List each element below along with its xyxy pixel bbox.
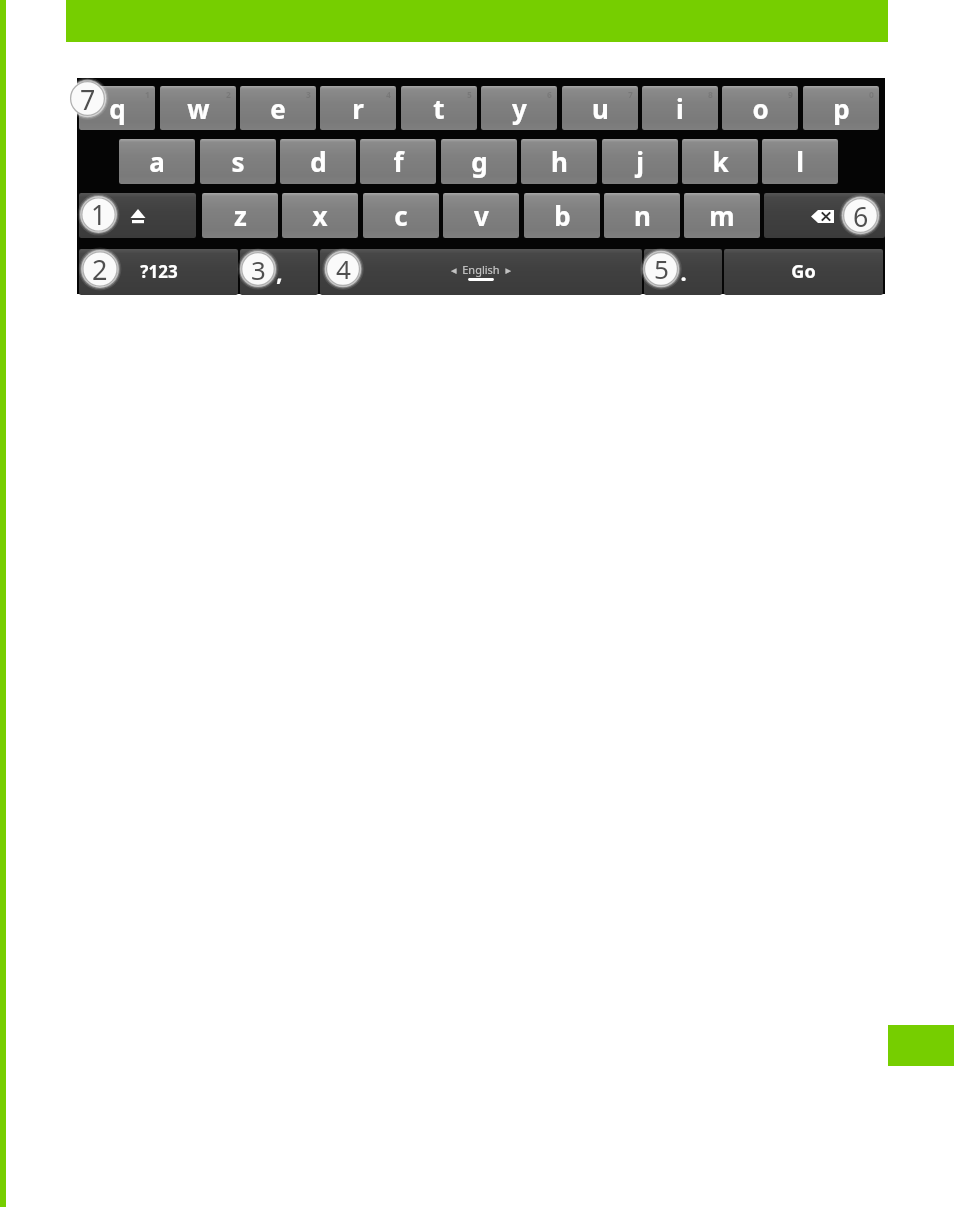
staticText: j <box>636 144 644 179</box>
button[interactable]: Space <box>320 249 642 295</box>
button[interactable]: v <box>443 193 519 238</box>
button[interactable]: m <box>684 193 760 238</box>
staticText: 6 <box>853 198 869 234</box>
button[interactable]: 3 <box>240 86 316 130</box>
button[interactable]: 9 <box>722 86 798 130</box>
staticText: 5 <box>467 89 472 101</box>
staticText: 2 <box>92 251 108 288</box>
staticText: e <box>270 91 286 126</box>
staticText: ?123 <box>140 260 178 283</box>
staticText: o <box>752 91 769 126</box>
staticText: 6 <box>547 89 552 101</box>
button[interactable]: 0 <box>803 86 879 130</box>
button[interactable]: a <box>119 139 195 184</box>
button[interactable]: 4 <box>320 86 396 130</box>
staticText: m <box>709 198 735 233</box>
staticText: c <box>394 198 408 233</box>
staticText: u <box>592 91 609 126</box>
staticText: 1 <box>91 197 107 233</box>
staticText: 7 <box>80 81 96 117</box>
button[interactable]: b <box>524 193 600 238</box>
button[interactable]: ?123 <box>79 249 238 295</box>
button[interactable]: l <box>762 139 838 184</box>
button[interactable]: g <box>441 139 517 184</box>
staticText: t <box>433 91 445 126</box>
staticText: n <box>634 198 651 233</box>
staticText: 8 <box>708 89 713 101</box>
staticText: p <box>833 91 850 126</box>
button[interactable]: c <box>363 193 439 238</box>
staticText: y <box>512 91 527 126</box>
button[interactable]: Shift <box>79 193 196 238</box>
staticText: d <box>310 144 327 179</box>
button[interactable]: 1 <box>79 86 155 130</box>
staticText: v <box>474 198 489 233</box>
staticText: 4 <box>386 89 391 101</box>
button[interactable]: 7 <box>562 86 638 130</box>
button[interactable]: x <box>282 193 358 238</box>
button[interactable]: 2 <box>160 86 236 130</box>
staticText: z <box>234 198 247 233</box>
staticText: 1 <box>145 89 150 101</box>
staticText: l <box>796 144 804 179</box>
button[interactable]: 8 <box>642 86 718 130</box>
button[interactable]: 6 <box>481 86 557 130</box>
button[interactable]: d <box>280 139 356 184</box>
staticText: . <box>680 257 687 287</box>
staticText: , <box>276 257 283 287</box>
staticText: 0 <box>869 89 874 101</box>
staticText: 3 <box>306 89 311 101</box>
staticText: w <box>187 91 210 126</box>
staticText: 4 <box>336 251 351 287</box>
staticText: a <box>149 144 165 179</box>
staticText: g <box>471 144 488 179</box>
staticText: 2 <box>226 89 231 101</box>
staticText: q <box>109 91 126 126</box>
button[interactable]: k <box>682 139 758 184</box>
button[interactable]: h <box>521 139 597 184</box>
staticText: k <box>712 144 729 179</box>
staticText: s <box>231 144 245 179</box>
staticText: x <box>312 198 328 233</box>
staticText: r <box>352 91 364 126</box>
button[interactable]: s <box>200 139 276 184</box>
staticText: h <box>551 144 568 179</box>
button[interactable]: 5 <box>401 86 477 130</box>
button[interactable]: n <box>604 193 680 238</box>
button[interactable]: Backspace <box>764 193 885 238</box>
button[interactable]: Go <box>724 249 883 295</box>
button[interactable]: j <box>602 139 678 184</box>
staticText: ◂ English ▸ <box>451 262 511 277</box>
staticText: b <box>554 198 571 233</box>
button[interactable]: z <box>202 193 278 238</box>
staticText: Go <box>791 259 816 284</box>
staticText: 3 <box>251 252 266 287</box>
staticText: 9 <box>788 89 793 101</box>
button[interactable]: , <box>240 249 318 295</box>
staticText: 7 <box>628 89 633 101</box>
staticText: 5 <box>654 251 669 287</box>
staticText: f <box>393 144 404 179</box>
staticText: i <box>676 91 684 126</box>
button[interactable]: f <box>360 139 436 184</box>
button[interactable]: . <box>644 249 722 295</box>
